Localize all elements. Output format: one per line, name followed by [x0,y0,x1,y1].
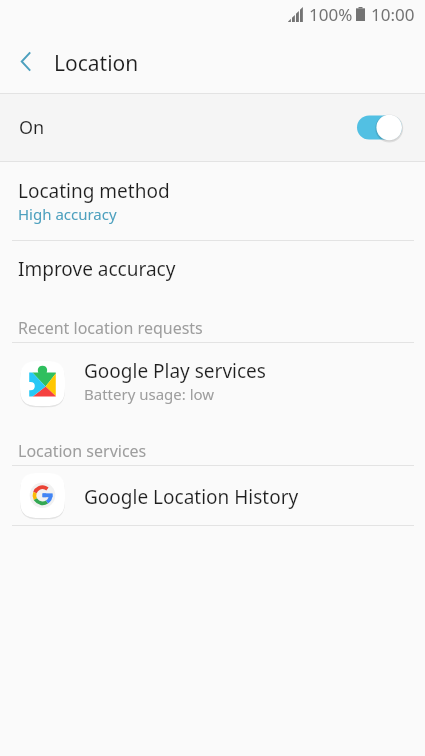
staticText: On [19,115,45,140]
button[interactable]: Google Play services [0,343,425,423]
staticText: Recent location requests [18,317,203,339]
button[interactable]: Locating method [0,162,425,240]
button[interactable]: Location on [357,114,403,142]
staticText: Location services [18,440,147,462]
button[interactable]: Navigate up [0,0,56,93]
staticText: Location [54,49,139,78]
staticText: High accuracy [18,204,117,224]
staticText: Google Play services [84,358,266,384]
button[interactable]: On [0,94,425,161]
button[interactable]: Improve accuracy [0,241,425,300]
staticText: Battery usage: low [84,384,215,404]
staticText: Google Location History [84,484,299,510]
staticText: 100% [309,3,353,26]
staticText: Locating method [18,178,170,204]
staticText: Improve accuracy [18,256,176,282]
staticText: 10:00 [371,3,415,26]
button[interactable]: Google Location History [0,466,425,525]
